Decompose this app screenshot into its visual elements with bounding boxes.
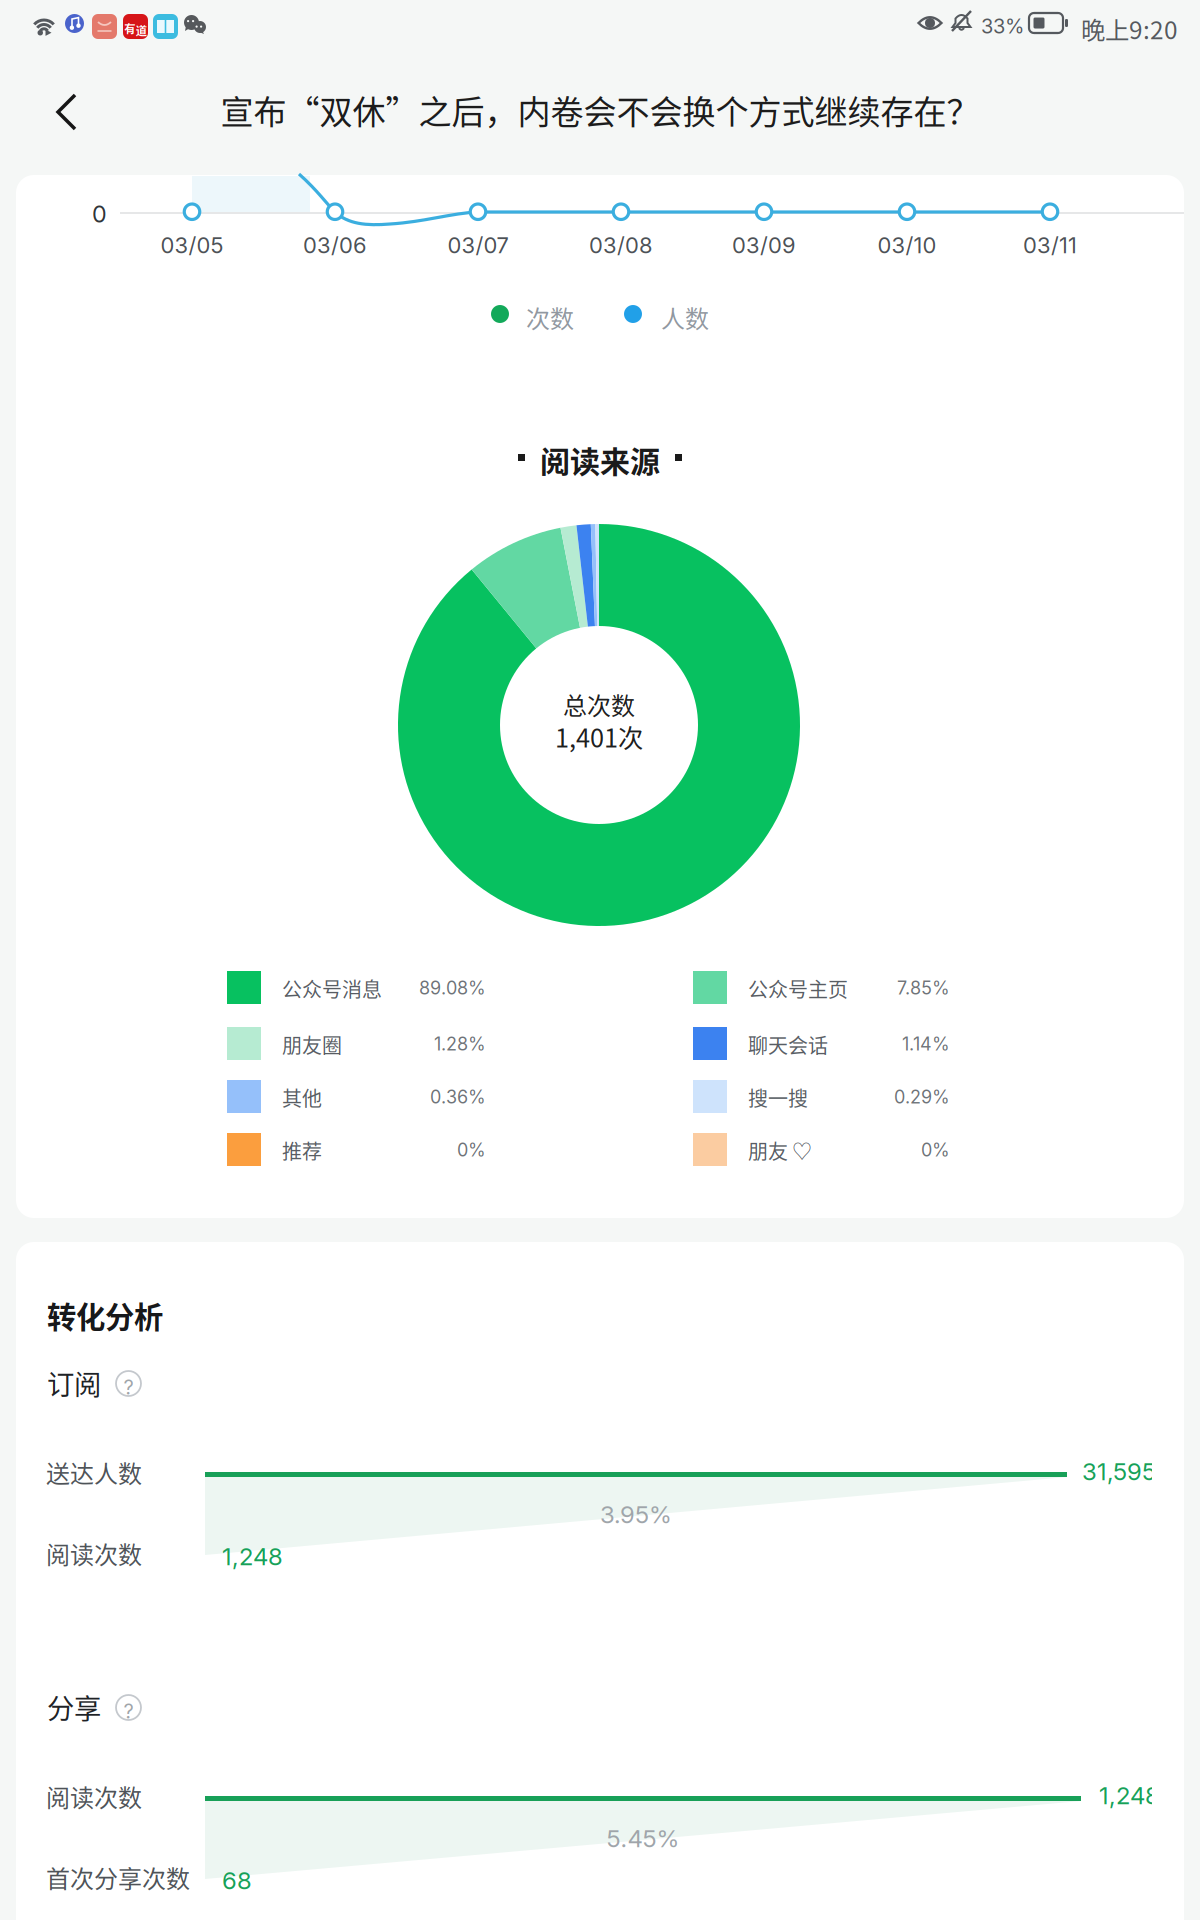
button[interactable]: 订阅说明 [109,1364,148,1403]
staticText: 朋友圈 [282,1030,342,1059]
staticText: 朋友 ♡ [748,1136,812,1165]
staticText: 道 [136,22,147,38]
staticText: 送达人数 [46,1455,142,1490]
staticText: 0 [92,200,107,228]
staticText: 公众号消息 [282,974,382,1003]
staticText: 推荐 [282,1136,322,1165]
staticText: 分享 [47,1687,101,1727]
staticText: 首次分享次数 [46,1860,190,1895]
button[interactable]: 返回 [16,62,136,162]
staticText: 3.95% [600,1500,672,1529]
staticText: 0% [457,1139,486,1161]
staticText: 0% [921,1139,950,1161]
staticText: 有 [124,20,135,36]
staticText: 0.36% [430,1086,486,1108]
staticText: 7.85% [897,977,950,999]
staticText: 03/11 [1023,232,1077,259]
staticText: 0.29% [894,1086,950,1108]
button[interactable]: 分享说明 [109,1688,148,1727]
staticText: 订阅 [47,1363,101,1403]
staticText: 阅读次数 [46,1536,142,1571]
staticText: 1,401次 [555,718,643,755]
staticText: 1.28% [434,1033,486,1055]
staticText: 1.14% [902,1033,950,1055]
staticText: 03/09 [732,232,796,259]
staticText: 人数 [661,300,709,335]
staticText: 转化分析 [47,1294,163,1336]
staticText: 03/10 [877,232,936,259]
staticText: 阅读来源 [540,438,660,481]
staticText: 33% [981,14,1024,38]
staticText: 总次数 [563,687,635,722]
staticText: 次数 [526,300,574,335]
staticText: 1,248 [222,1542,283,1571]
staticText: 1,248 [1099,1781,1160,1810]
staticText: 31,595 [1082,1457,1156,1486]
staticText: 03/08 [589,232,653,259]
staticText: 5.45% [606,1824,679,1853]
staticText: ? [123,1375,133,1399]
staticText: 公众号主页 [748,974,848,1003]
staticText: ? [123,1699,133,1723]
staticText: 聊天会话 [748,1030,828,1059]
staticText: 89.08% [419,977,486,999]
staticText: 其他 [282,1083,322,1112]
staticText: 宣布“双休”之后，内卷会不会换个方式继续存在？ [220,86,979,134]
staticText: 晚上9:20 [1081,11,1178,46]
staticText: 03/06 [303,232,367,259]
staticText: 68 [222,1866,252,1895]
staticText: 阅读次数 [46,1779,142,1814]
staticText: 03/07 [447,232,508,259]
staticText: 03/05 [160,232,223,259]
staticText: 搜一搜 [748,1083,808,1112]
